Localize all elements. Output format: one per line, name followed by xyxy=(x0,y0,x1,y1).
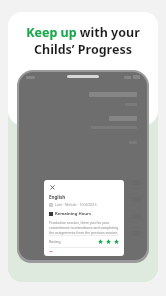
staticText: Productive session, there you for your c… xyxy=(49,220,119,235)
staticText: Keep up with your Childs’ Progress xyxy=(26,24,140,57)
staticText: Late · Mobile · 10/4/2023 xyxy=(55,202,97,207)
button[interactable]: Close xyxy=(49,184,56,191)
button[interactable]: Do you have problems with the session? xyxy=(49,251,119,252)
staticText: English xyxy=(49,194,66,200)
staticText: Rating xyxy=(49,239,61,244)
button[interactable]: Close xyxy=(44,180,124,256)
staticText: Remaining Hours xyxy=(55,211,92,217)
